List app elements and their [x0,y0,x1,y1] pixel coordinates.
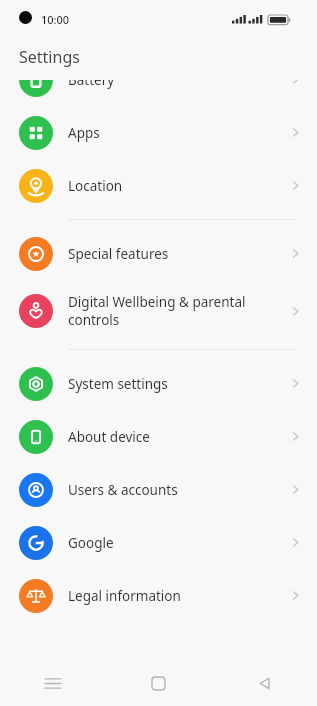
staticText: 10:00 [41,12,70,27]
button[interactable]: About device [0,410,317,463]
staticText: Users & accounts [68,481,178,499]
button[interactable]: Google [0,516,317,569]
staticText: System settings [68,375,168,393]
staticText: Location [68,177,123,195]
staticText: Apps [68,124,100,142]
button[interactable]: Recent apps [0,660,105,706]
button[interactable]: Special features [0,227,317,280]
staticText: Settings [19,46,80,68]
button[interactable]: Location [0,159,317,212]
button[interactable]: Home [105,660,211,706]
staticText: Special features [68,245,169,263]
staticText: Digital Wellbeing & parental [68,293,246,311]
staticText: Legal information [68,587,181,605]
button[interactable]: Digital Wellbeing & parental [0,280,317,342]
staticText: Google [68,534,114,552]
staticText: About device [68,428,150,446]
button[interactable]: Apps [0,106,317,159]
staticText: Battery [68,80,115,89]
button[interactable]: Back [211,660,317,706]
button[interactable]: Users & accounts [0,463,317,516]
button[interactable]: Legal information [0,569,317,622]
button[interactable]: System settings [0,357,317,410]
button[interactable]: Battery [0,80,317,106]
staticText: controls [68,311,120,329]
